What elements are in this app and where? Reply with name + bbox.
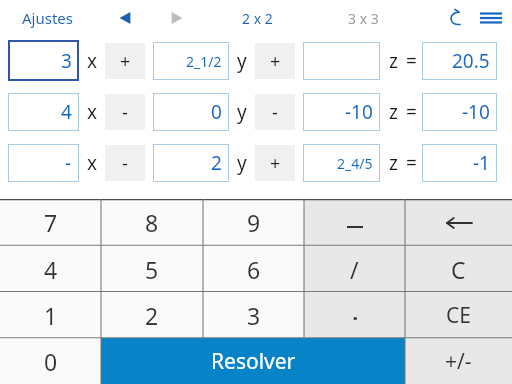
button[interactable]: Siguiente (160, 1, 194, 35)
button[interactable]: 3 (8, 40, 79, 81)
staticText: 0 (211, 99, 222, 125)
button[interactable]: - (105, 145, 145, 181)
button[interactable]: 0 (153, 93, 229, 131)
button[interactable]: 5 (101, 246, 203, 292)
button[interactable]: Resolver (101, 338, 405, 384)
staticText: 5 (145, 254, 159, 285)
staticText: 3 (247, 300, 261, 331)
button[interactable] (304, 292, 405, 338)
staticText: 2_1/2 (186, 52, 222, 71)
staticText: 20.5 (452, 48, 490, 74)
staticText: 9 (247, 207, 261, 238)
staticText: Resolver (211, 347, 296, 376)
button[interactable]: - (105, 94, 145, 130)
staticText: 2 (211, 150, 222, 176)
staticText: - (122, 100, 128, 125)
button[interactable]: 8 (101, 199, 203, 246)
other: Borrar (444, 208, 474, 238)
button[interactable]: 2 (101, 292, 203, 338)
button[interactable]: 20.5 (422, 42, 497, 80)
staticText: y (237, 48, 247, 74)
button[interactable] (304, 199, 405, 246)
staticText: - (272, 100, 278, 125)
staticText: y (237, 150, 247, 176)
staticText: z (389, 48, 398, 74)
button[interactable]: C (405, 246, 512, 292)
staticText: -10 (462, 99, 490, 125)
button[interactable]: Anterior (108, 1, 142, 35)
staticText: 3 (61, 48, 72, 74)
staticText: - (122, 151, 128, 176)
button[interactable]: -10 (422, 93, 497, 131)
staticText: 8 (145, 207, 159, 238)
button[interactable]: 4 (0, 246, 101, 292)
staticText: 7 (44, 207, 58, 238)
staticText: + (270, 49, 281, 74)
staticText: = (406, 150, 417, 176)
button[interactable]: Menú (474, 1, 508, 35)
staticText: = (406, 48, 417, 74)
button[interactable]: Deshacer (438, 1, 472, 35)
staticText: 2_4/5 (337, 154, 373, 173)
staticText: + (120, 49, 131, 74)
button[interactable]: 0 (0, 338, 101, 384)
staticText: C (451, 254, 466, 285)
button[interactable]: 3 (203, 292, 304, 338)
staticText: 4 (61, 99, 72, 125)
button[interactable]: - (255, 94, 295, 130)
button[interactable]: 2_1/2 (153, 42, 229, 80)
button[interactable]: - (8, 144, 79, 182)
button[interactable]: 3 x 3 (342, 3, 385, 34)
staticText: z (389, 99, 398, 125)
staticText: 1 (44, 300, 58, 331)
button[interactable]: -10 (303, 93, 380, 131)
button[interactable]: -1 (422, 144, 497, 182)
staticText: Ajustes (22, 8, 73, 28)
button[interactable]: 2 (153, 144, 229, 182)
button[interactable]: +/- (405, 338, 512, 384)
button[interactable]: CE (405, 292, 512, 338)
staticText: z (389, 150, 398, 176)
button[interactable]: + (255, 145, 295, 181)
staticText: 0 (44, 346, 58, 377)
staticText: 3 x 3 (348, 9, 379, 28)
button[interactable]: + (105, 43, 145, 79)
button[interactable]: / (304, 246, 405, 292)
staticText: x (87, 48, 98, 74)
button[interactable]: 4 (8, 93, 79, 131)
staticText: 4 (44, 254, 58, 285)
button[interactable]: 1 (0, 292, 101, 338)
button[interactable]: + (255, 43, 295, 79)
button[interactable] (303, 42, 380, 80)
staticText: -1 (473, 150, 490, 176)
staticText: y (237, 99, 247, 125)
button[interactable]: 6 (203, 246, 304, 292)
staticText: 6 (247, 254, 261, 285)
button[interactable]: 9 (203, 199, 304, 246)
staticText: -10 (345, 99, 373, 125)
staticText: + (270, 151, 281, 176)
staticText: - (65, 150, 72, 176)
button[interactable]: 7 (0, 199, 101, 246)
staticText: x (87, 99, 98, 125)
staticText: 2 x 2 (242, 9, 273, 28)
button[interactable]: 2_4/5 (303, 144, 380, 182)
button[interactable]: 2 x 2 (236, 3, 279, 34)
staticText: / (350, 254, 359, 285)
staticText: CE (446, 301, 471, 330)
button[interactable]: Borrar (405, 199, 512, 246)
staticText: x (87, 150, 98, 176)
staticText: +/- (445, 347, 472, 376)
button[interactable]: Ajustes (18, 4, 77, 32)
staticText: = (406, 99, 417, 125)
staticText: 2 (145, 300, 159, 331)
